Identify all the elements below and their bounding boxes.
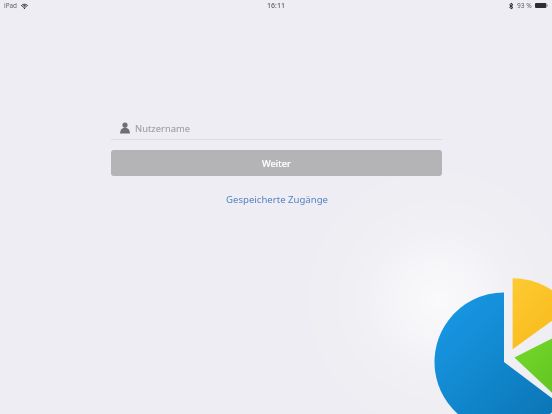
staticText: 93 %	[517, 1, 532, 10]
staticText: Weiter	[262, 157, 291, 170]
button[interactable]: Gespeicherte Zugänge	[226, 193, 328, 206]
staticText: Nutzername	[135, 122, 191, 135]
staticText: 16:11	[267, 1, 285, 11]
staticText: iPad	[4, 1, 18, 10]
button[interactable]: Weiter	[111, 150, 442, 176]
